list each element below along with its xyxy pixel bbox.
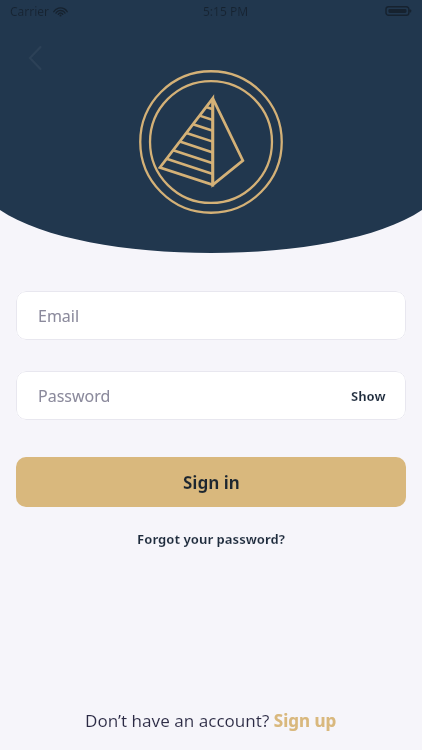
button[interactable]: Email bbox=[16, 291, 406, 340]
staticText: Email bbox=[38, 305, 80, 327]
staticText: Show bbox=[351, 387, 386, 405]
button[interactable]: Forgot your password? bbox=[16, 530, 406, 548]
button[interactable]: Show bbox=[351, 387, 386, 405]
button[interactable]: Sign in bbox=[16, 457, 406, 507]
button[interactable]: Password bbox=[16, 371, 406, 420]
staticText: Carrier bbox=[10, 3, 50, 19]
staticText: Password bbox=[38, 385, 111, 407]
staticText: Don’t have an account? Sign up bbox=[85, 709, 337, 732]
staticText: Sign in bbox=[183, 471, 240, 494]
button[interactable]: Don’t have an account? Sign up bbox=[77, 705, 345, 736]
staticText: Forgot your password? bbox=[137, 530, 285, 548]
staticText: 5:15 PM bbox=[203, 3, 249, 19]
